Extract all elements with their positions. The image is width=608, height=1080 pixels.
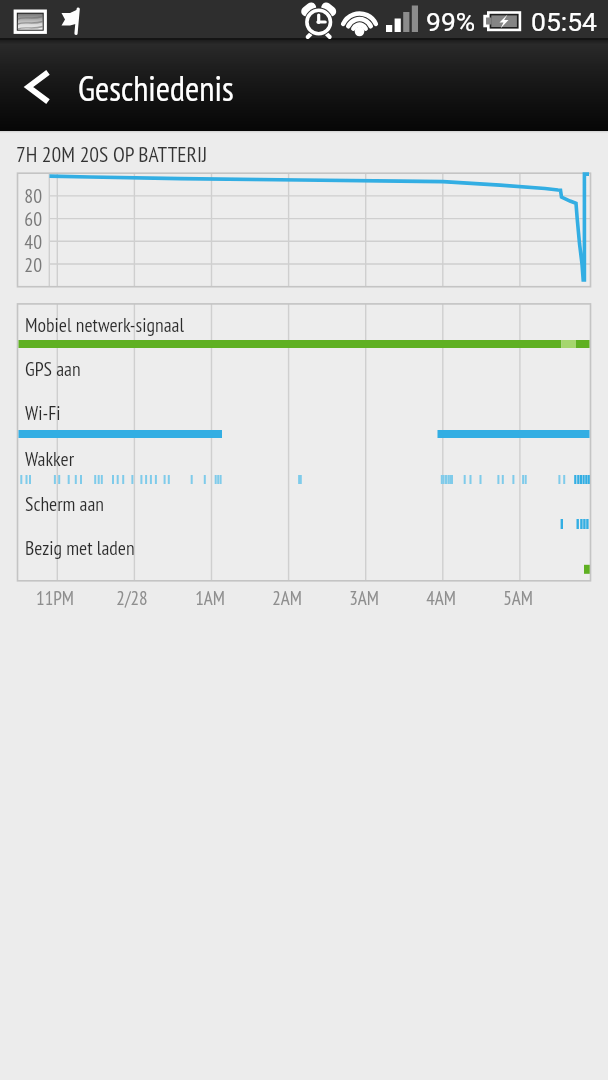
staticText: 20 [17,252,42,277]
staticText: 7H 20M 20S OP BATTERIJ [16,140,208,168]
staticText: GPS aan [25,356,81,381]
staticText: 3AM [324,586,404,611]
staticText: Geschiedenis [78,66,234,111]
staticText: 99% [426,6,476,37]
staticText: Mobiel netwerk-signaal [25,312,184,337]
staticText: Bezig met laden [25,535,135,560]
staticText: 60 [17,206,42,231]
staticText: 11PM [15,586,95,611]
staticText: 5AM [478,586,558,611]
staticText: Wi-Fi [25,400,61,425]
staticText: 1AM [170,586,250,611]
staticText: 05:54 [531,6,597,37]
staticText: 4AM [401,586,481,611]
staticText: 80 [17,183,42,208]
staticText: 40 [17,229,42,254]
staticText: Wakker [25,446,75,471]
staticText: 2AM [247,586,327,611]
button[interactable]: Back [0,40,70,131]
staticText: 2/28 [92,586,172,611]
staticText: Scherm aan [25,491,105,516]
